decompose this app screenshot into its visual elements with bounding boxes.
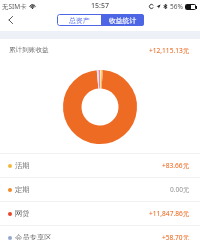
staticText: 15:57 — [91, 1, 109, 11]
staticText: +58.70元 — [162, 233, 190, 240]
staticText: 网贷 — [15, 209, 30, 218]
staticText: 累计到账收益 — [9, 46, 49, 54]
button[interactable]: 定期 — [0, 177, 200, 201]
staticText: 总资产 — [69, 16, 90, 25]
staticText: 定期 — [15, 185, 30, 194]
button[interactable]: 会员专享区 — [0, 225, 200, 240]
staticText: 活期 — [15, 161, 30, 170]
staticText: 56% — [170, 2, 183, 11]
button[interactable]: Back — [0, 13, 22, 27]
staticText: 收益统计 — [109, 16, 137, 25]
staticText: 0.00元 — [170, 185, 190, 194]
button[interactable]: 总资产 — [57, 14, 101, 26]
button[interactable]: 收益统计 — [101, 14, 144, 26]
staticText: 无SIM卡 — [2, 2, 27, 11]
staticText: 会员专享区 — [15, 233, 52, 240]
button[interactable]: 活期 — [0, 153, 200, 177]
staticText: +83.66元 — [162, 161, 190, 170]
button[interactable]: 网贷 — [0, 201, 200, 225]
staticText: +11,847.86元 — [149, 209, 190, 218]
staticText: +12,115.13元 — [149, 46, 190, 55]
